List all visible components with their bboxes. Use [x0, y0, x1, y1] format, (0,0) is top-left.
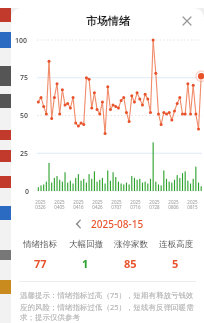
button[interactable]: Previous day [71, 216, 87, 232]
staticText: 85 [124, 256, 137, 271]
staticText: 2025-08-15 [91, 217, 144, 231]
button[interactable]: 大幅回撤 [63, 239, 108, 271]
staticText: 25 [20, 149, 29, 159]
staticText: 2025 0405 [50, 199, 69, 210]
staticText: 大幅回撤 [69, 239, 103, 250]
staticText: 2025 0716 [126, 199, 145, 210]
staticText: 75 [20, 73, 29, 83]
button[interactable]: 连板高度 [153, 239, 198, 271]
staticText: 2025 0707 [107, 199, 126, 210]
button[interactable]: 情绪指标 [17, 239, 63, 271]
staticText: 2025 0326 [31, 199, 50, 210]
staticText: 77 [34, 256, 47, 271]
button[interactable]: 涨停家数 [108, 239, 153, 271]
staticText: 温馨提示：情绪指标过高（75），短期有释放亏钱效应的风险；情绪指标过低（25），… [20, 290, 195, 322]
staticText: 2025 0806 [164, 199, 183, 210]
staticText: 市场情绪 [86, 14, 130, 28]
staticText: 100 [15, 36, 28, 46]
staticText: 连板高度 [159, 239, 193, 250]
staticText: 50 [20, 111, 29, 121]
staticText: 2025 0426 [88, 199, 107, 210]
staticText: 涨停家数 [114, 239, 148, 250]
staticText: 5 [172, 256, 179, 271]
staticText: 情绪指标 [23, 239, 57, 250]
staticText: 1 [82, 256, 89, 271]
staticText: 0 [25, 187, 30, 197]
staticText: 2025 0728 [145, 199, 164, 210]
button[interactable]: Close [178, 12, 196, 30]
staticText: 2025 0815 [183, 199, 202, 210]
staticText: 2025 0416 [69, 199, 88, 210]
